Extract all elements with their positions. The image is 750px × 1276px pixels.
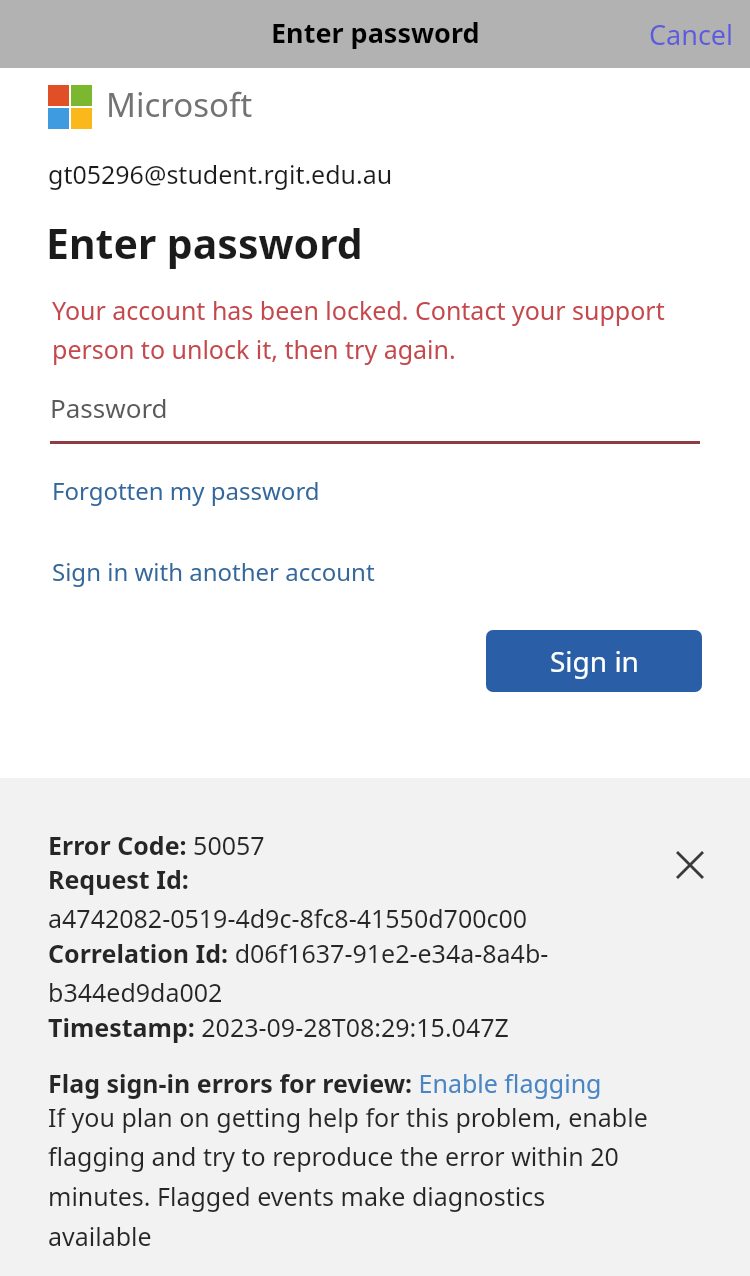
staticText: Timestamp: 2023-09-28T08:29:15.047Z [48, 1010, 509, 1044]
button[interactable]: Cancel [633, 4, 750, 65]
staticText: Microsoft [106, 82, 253, 127]
button[interactable]: Password [50, 390, 700, 444]
button[interactable]: Forgotten my password [0, 470, 344, 511]
staticText: Cancel [649, 16, 734, 53]
staticText: Password [50, 390, 168, 425]
staticText: Enter password [46, 215, 363, 271]
staticText: Sign in with another account [52, 555, 375, 588]
staticText: Flag sign-in errors for review: Enable f… [48, 1066, 650, 1100]
staticText: If you plan on getting help for this pro… [48, 1100, 650, 1254]
staticText: Enter password [271, 14, 480, 51]
staticText: Error Code: 50057 [48, 828, 265, 862]
button[interactable]: Sign in with another account [0, 551, 399, 592]
button[interactable]: Close [668, 843, 712, 887]
staticText: Sign in [550, 642, 639, 680]
staticText: gt05296@student.rgit.edu.au [48, 157, 393, 191]
staticText: Correlation Id: d06f1637-91e2-e34a-8a4b-… [48, 936, 650, 1010]
button[interactable]: Sign in [486, 630, 702, 692]
staticText: Request Id: a4742082-0519-4d9c-8fc8-4155… [48, 862, 650, 936]
staticText: Your account has been locked. Contact yo… [52, 293, 706, 366]
staticText: Forgotten my password [52, 474, 320, 507]
